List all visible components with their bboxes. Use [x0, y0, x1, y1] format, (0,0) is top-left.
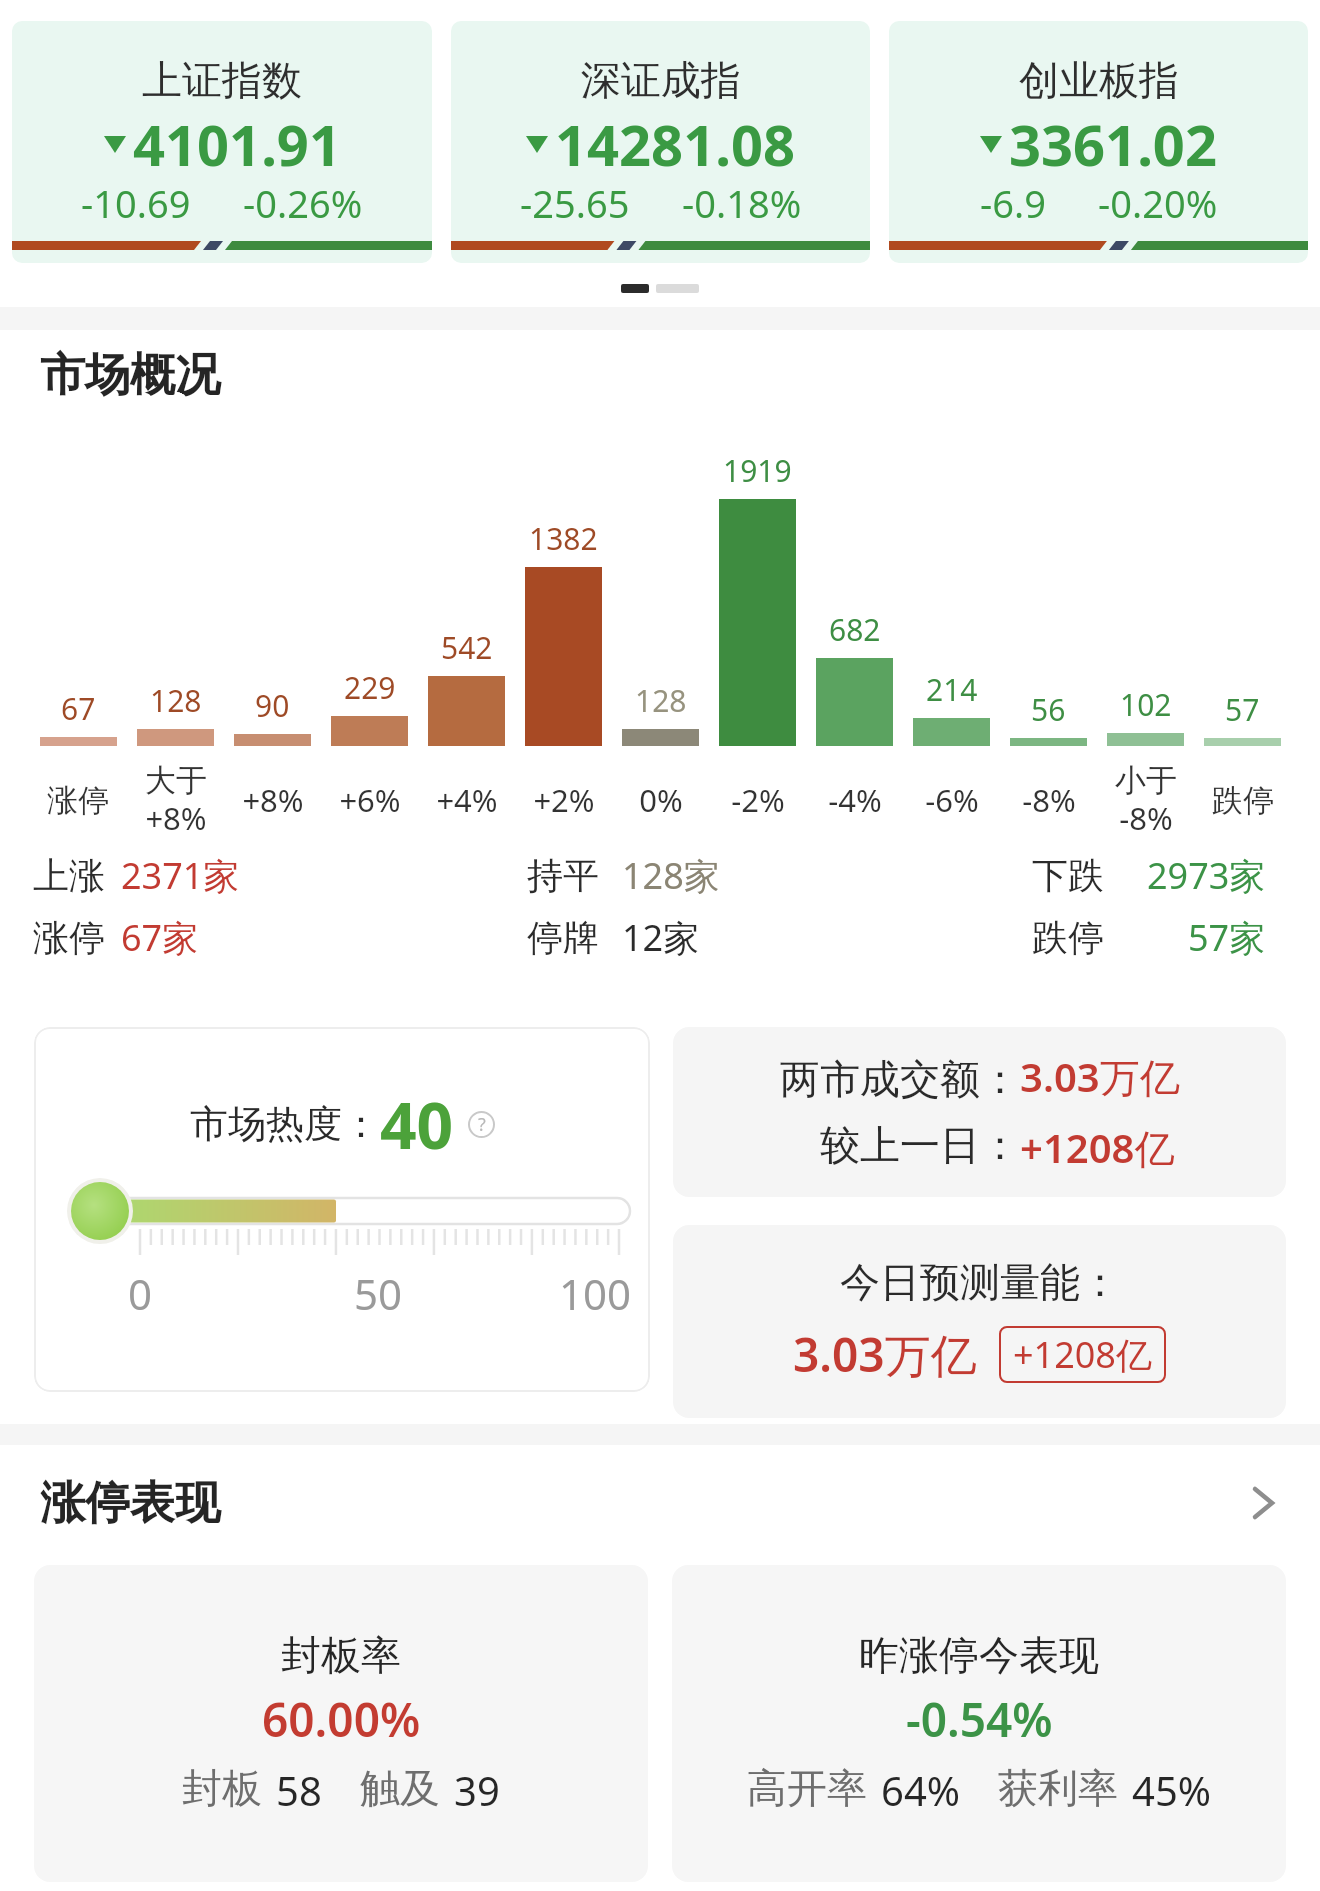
staticText: 12家 — [622, 913, 700, 962]
staticText: 涨停 — [33, 915, 105, 960]
staticText: 深证成指 — [581, 55, 741, 105]
staticText: +6% — [339, 779, 401, 821]
button[interactable]: 昨涨停今表现 — [672, 1565, 1286, 1882]
staticText: 创业板指 — [1019, 55, 1179, 105]
staticText: 102 — [1120, 684, 1172, 725]
staticText: 跌停 — [1212, 781, 1274, 820]
staticText: -0.26% — [243, 177, 363, 229]
staticText: 高开率 — [747, 1763, 867, 1813]
staticText: 今日预测量能： — [840, 1257, 1120, 1307]
staticText: 持平 — [527, 853, 599, 898]
staticText: 56 — [1031, 689, 1066, 730]
staticText: 涨停 — [47, 781, 109, 820]
staticText: 67家 — [121, 913, 199, 962]
staticText: 542 — [441, 627, 493, 668]
staticText: 小于 -8% — [1115, 761, 1177, 839]
staticText: -25.65 — [520, 177, 630, 229]
staticText: 停牌 — [527, 915, 599, 960]
staticText: 58 — [276, 1763, 322, 1817]
staticText: 市场概况 — [40, 347, 220, 404]
staticText: +1208亿 — [1020, 1120, 1175, 1175]
staticText: 14281.08 — [555, 106, 795, 182]
staticText: -2% — [731, 779, 785, 821]
staticText: 触及 — [360, 1763, 440, 1813]
staticText: 39 — [454, 1763, 500, 1817]
staticText: 2371家 — [121, 851, 240, 900]
staticText: 57家 — [1188, 913, 1266, 962]
staticText: -4% — [828, 779, 882, 821]
staticText: +8% — [242, 779, 304, 821]
staticText: -6.9 — [980, 177, 1046, 229]
staticText: ? — [478, 1112, 486, 1137]
button[interactable]: 深证成指 — [451, 21, 870, 263]
staticText: 50 — [354, 1265, 403, 1322]
staticText: 下跌 — [1032, 853, 1104, 898]
button[interactable]: 创业板指 — [889, 21, 1308, 263]
staticText: 214 — [926, 669, 978, 710]
staticText: 64% — [881, 1763, 960, 1817]
staticText: -10.69 — [81, 177, 191, 229]
staticText: 昨涨停今表现 — [859, 1630, 1099, 1680]
staticText: 57 — [1225, 689, 1260, 730]
staticText: 跌停 — [1032, 915, 1104, 960]
staticText: 两市成交额： — [780, 1054, 1020, 1104]
staticText: 128家 — [622, 851, 720, 900]
button[interactable]: 封板率 — [34, 1565, 648, 1882]
staticText: 大于 +8% — [145, 761, 207, 839]
button[interactable]: 涨停表现 — [0, 1472, 1320, 1534]
staticText: 上证指数 — [142, 55, 302, 105]
staticText: 较上一日： — [820, 1120, 1020, 1170]
staticText: 3.03万亿 — [793, 1323, 977, 1386]
staticText: 45% — [1132, 1763, 1211, 1817]
staticText: 3.03万亿 — [1020, 1049, 1180, 1104]
staticText: 100 — [559, 1265, 632, 1322]
staticText: -8% — [1022, 779, 1076, 821]
staticText: 229 — [344, 667, 396, 708]
staticText: 3361.02 — [1009, 106, 1217, 182]
staticText: 封板率 — [281, 1630, 401, 1680]
button[interactable]: 今日预测量能： — [673, 1225, 1286, 1418]
staticText: 67 — [61, 688, 96, 729]
staticText: 128 — [635, 680, 687, 721]
button[interactable]: 两市成交额： — [673, 1027, 1286, 1197]
staticText: 1919 — [723, 450, 792, 491]
staticText: 涨停表现 — [40, 1475, 220, 1532]
staticText: 0 — [128, 1265, 153, 1322]
staticText: 90 — [255, 685, 290, 726]
staticText: -0.18% — [682, 177, 802, 229]
staticText: 682 — [829, 609, 881, 650]
staticText: 获利率 — [998, 1763, 1118, 1813]
staticText: 封板 — [182, 1763, 262, 1813]
staticText: -0.20% — [1098, 177, 1218, 229]
staticText: 128 — [150, 680, 202, 721]
staticText: 40 — [380, 1081, 454, 1168]
staticText: +1208亿 — [1013, 1330, 1152, 1379]
staticText: 市场热度： — [190, 1100, 380, 1148]
button[interactable]: 上证指数 — [12, 21, 432, 263]
staticText: 0% — [639, 779, 683, 821]
staticText: 4101.91 — [133, 106, 341, 182]
staticText: +4% — [436, 779, 498, 821]
staticText: +2% — [533, 779, 595, 821]
staticText: -0.54% — [906, 1688, 1053, 1751]
button[interactable]: 市场热度： — [34, 1027, 650, 1392]
staticText: 60.00% — [262, 1688, 421, 1751]
staticText: 上涨 — [33, 853, 105, 898]
staticText: 2973家 — [1147, 851, 1266, 900]
staticText: 1382 — [529, 518, 598, 559]
staticText: -6% — [925, 779, 979, 821]
